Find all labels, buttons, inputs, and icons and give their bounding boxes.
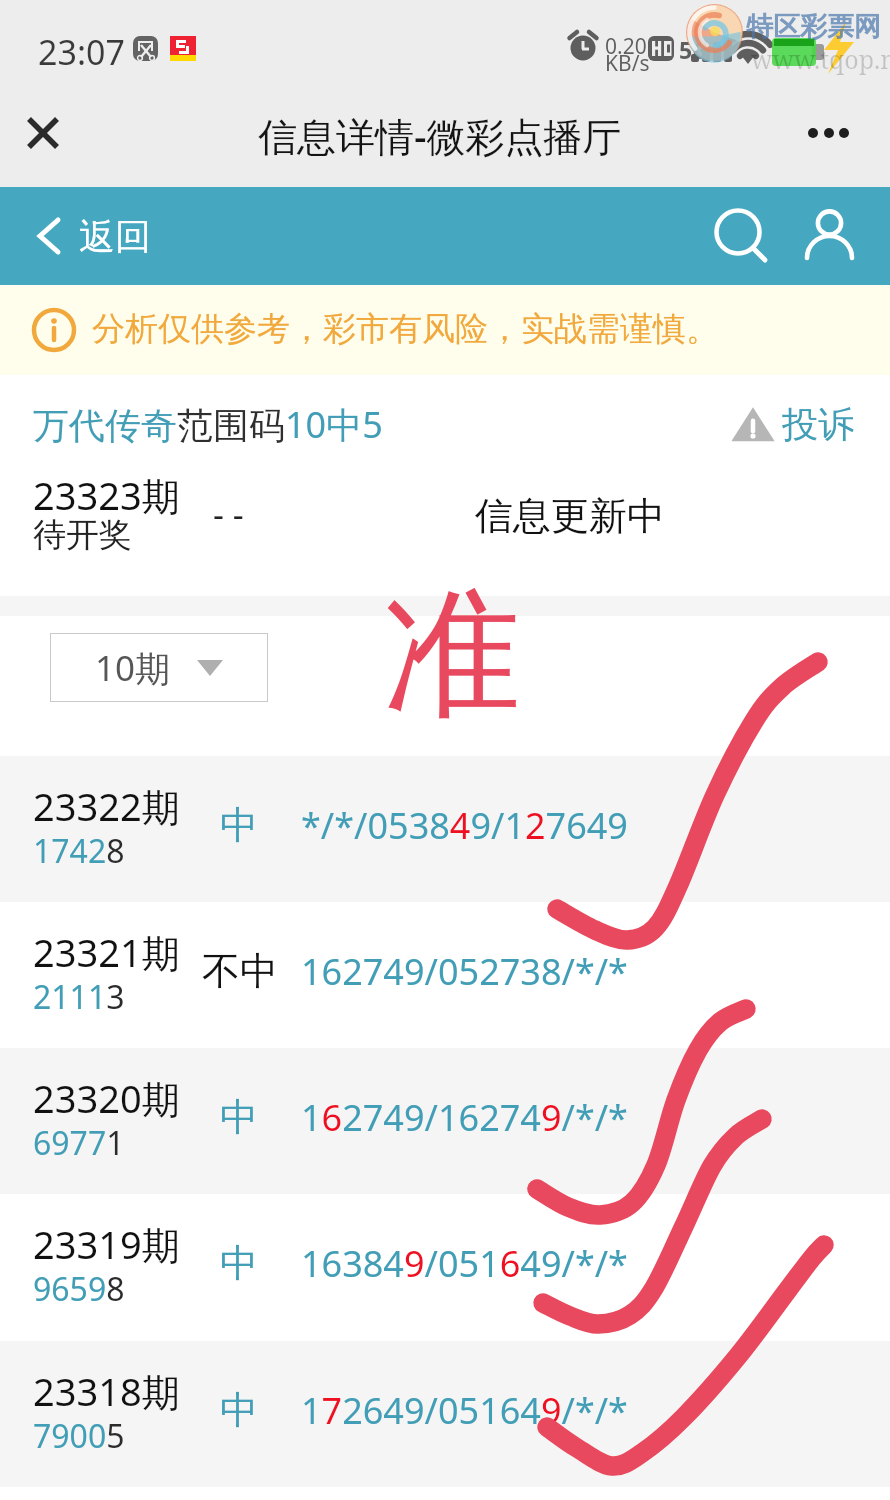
staticText: 返回 xyxy=(79,214,151,259)
staticText: KB/s xyxy=(605,49,650,78)
staticText: 中 xyxy=(220,1386,258,1434)
staticText: 中 xyxy=(220,801,258,849)
staticText: 信息更新中 xyxy=(475,492,665,540)
staticText: */*/053849/127649 xyxy=(301,801,628,850)
staticText: 23322期 xyxy=(33,780,180,832)
button[interactable]: 分析仅供参考，彩市有风险，实战需谨慎。 xyxy=(0,285,627,375)
staticText: 23321期 xyxy=(33,926,180,978)
staticText: 23319期 xyxy=(33,1218,180,1270)
staticText: 17428 xyxy=(33,829,125,873)
staticText: 不中 xyxy=(202,947,278,995)
staticText: 162749/162749/*/* xyxy=(301,1093,628,1142)
staticText: 0.20 xyxy=(605,32,647,61)
staticText: 特区彩票网 xyxy=(746,10,881,44)
staticText: 万代传奇范围码10中5 xyxy=(33,400,383,449)
staticText: 信息详情-微彩点播厅 xyxy=(258,109,622,162)
staticText: 79005 xyxy=(33,1414,125,1458)
staticText: 23323期 xyxy=(33,469,180,521)
button[interactable]: More options xyxy=(798,110,854,156)
staticText: 23320期 xyxy=(33,1072,180,1124)
staticText: 待开奖 xyxy=(33,514,132,556)
staticText: 23:07 xyxy=(38,29,125,75)
staticText: 69771 xyxy=(33,1121,125,1165)
staticText: 163849/051649/*/* xyxy=(301,1239,628,1288)
staticText: 10期 xyxy=(95,644,171,692)
staticText: 中 xyxy=(220,1239,258,1287)
staticText: 162749/052738/*/* xyxy=(301,947,628,996)
button[interactable]: 10期 xyxy=(50,633,268,702)
staticText: 5G xyxy=(679,34,709,65)
staticText: 中 xyxy=(220,1093,258,1141)
staticText: 96598 xyxy=(33,1267,125,1311)
staticText: - - xyxy=(213,491,244,537)
staticText: 172649/051649/*/* xyxy=(301,1386,628,1435)
button[interactable]: Account xyxy=(797,200,867,270)
staticText: 21113 xyxy=(33,975,125,1019)
staticText: 投诉 xyxy=(782,402,854,447)
button[interactable]: Close xyxy=(16,106,70,160)
staticText: 分析仅供参考，彩市有风险，实战需谨慎。 xyxy=(92,308,719,350)
staticText: www.tqop.net xyxy=(751,42,890,76)
staticText: 准 xyxy=(383,569,521,743)
button[interactable]: 返回 xyxy=(24,200,164,272)
button[interactable]: Search xyxy=(706,200,776,270)
button[interactable]: 投诉 xyxy=(730,398,854,450)
staticText: 23318期 xyxy=(33,1365,180,1417)
